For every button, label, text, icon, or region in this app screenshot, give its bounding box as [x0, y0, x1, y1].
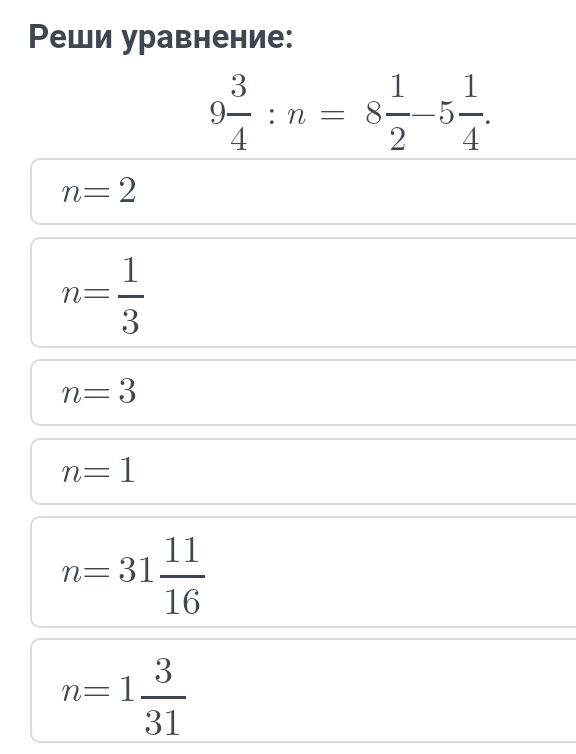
staticText: 11: [163, 519, 202, 573]
staticText: 3: [154, 640, 174, 694]
staticText: 1: [121, 239, 141, 293]
button[interactable]: n: [30, 237, 576, 348]
staticText: 1: [389, 58, 407, 108]
staticText: =: [319, 85, 347, 135]
staticText: 2: [118, 159, 138, 213]
staticText: 31: [144, 692, 183, 740]
button[interactable]: n: [30, 516, 576, 628]
staticText: 3: [118, 360, 138, 414]
staticText: :: [267, 85, 277, 135]
staticText: =: [82, 159, 112, 213]
staticText: 1: [118, 658, 138, 712]
staticText: 16: [163, 571, 202, 625]
staticText: Реши уравнение:: [28, 17, 294, 56]
staticText: 1: [462, 58, 480, 108]
button[interactable]: n: [30, 359, 576, 426]
staticText: n: [59, 539, 81, 593]
button[interactable]: n: [30, 638, 576, 743]
staticText: .: [483, 85, 493, 135]
staticText: 3: [230, 58, 248, 108]
staticText: 8: [365, 85, 383, 135]
staticText: =: [82, 658, 112, 712]
staticText: n: [59, 260, 81, 314]
staticText: n: [59, 159, 81, 213]
staticText: n: [59, 360, 81, 414]
button[interactable]: n: [30, 438, 576, 505]
staticText: 5: [438, 85, 456, 135]
staticText: −: [410, 85, 438, 135]
staticText: 2: [389, 111, 407, 161]
staticText: 1: [118, 439, 138, 493]
staticText: n: [59, 439, 81, 493]
staticText: 9: [209, 85, 227, 135]
staticText: =: [82, 260, 112, 314]
staticText: 31: [118, 539, 157, 593]
staticText: 3: [121, 291, 141, 345]
button[interactable]: n: [30, 158, 576, 225]
staticText: 4: [230, 111, 248, 161]
staticText: 4: [462, 111, 480, 161]
staticText: =: [82, 539, 112, 593]
staticText: n: [59, 658, 81, 712]
staticText: n: [285, 85, 305, 135]
staticText: =: [82, 360, 112, 414]
staticText: =: [82, 439, 112, 493]
